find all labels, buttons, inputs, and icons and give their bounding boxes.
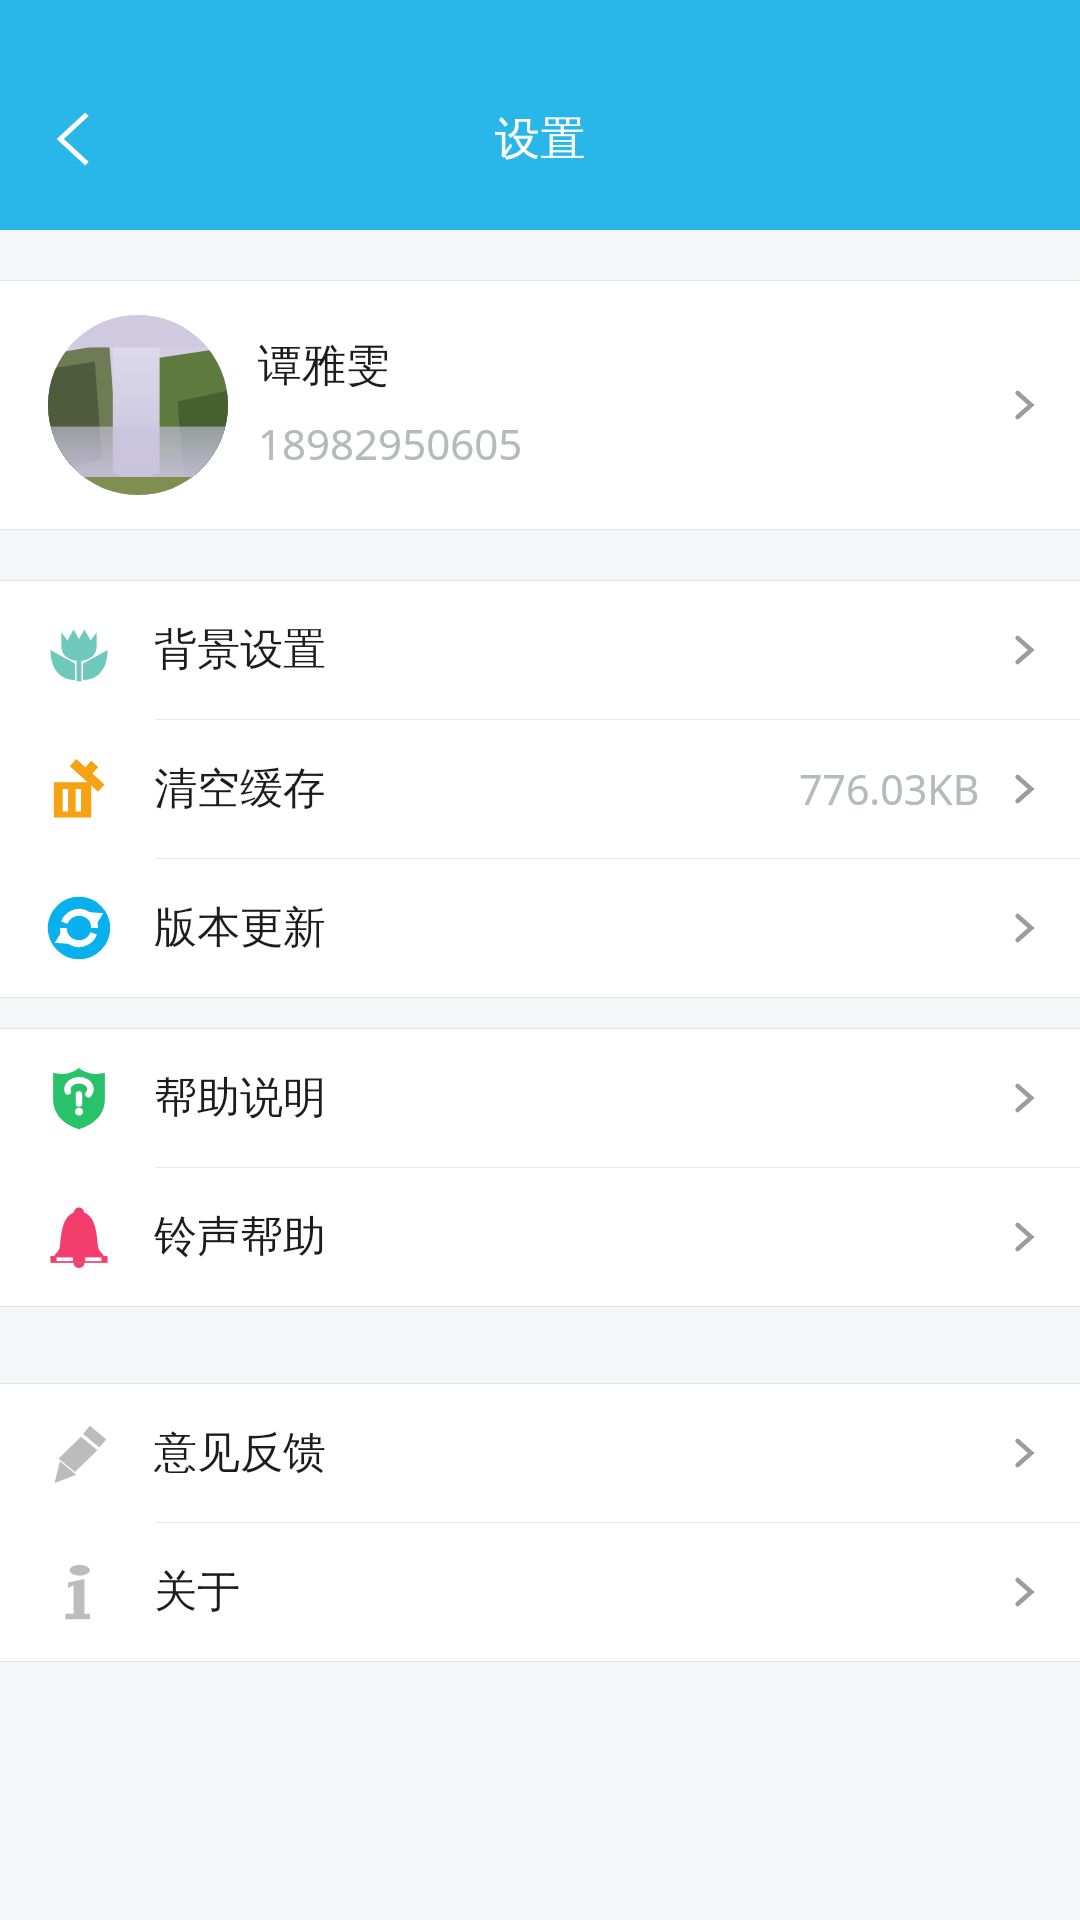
staticText: 版本更新 xyxy=(154,901,326,955)
button[interactable]: Back xyxy=(20,84,130,194)
staticText: 设置 xyxy=(0,111,1080,168)
staticText: 关于 xyxy=(154,1565,240,1619)
button[interactable]: 关于 xyxy=(0,1523,1080,1661)
button[interactable]: 谭雅雯 xyxy=(0,281,1080,529)
staticText: 帮助说明 xyxy=(154,1071,326,1125)
button[interactable]: 版本更新 xyxy=(0,859,1080,997)
staticText: 背景设置 xyxy=(154,623,326,677)
staticText: 18982950605 xyxy=(258,415,523,472)
button[interactable]: 帮助说明 xyxy=(0,1029,1080,1167)
button[interactable]: 意见反馈 xyxy=(0,1384,1080,1522)
button[interactable]: 铃声帮助 xyxy=(0,1168,1080,1306)
button[interactable]: 背景设置 xyxy=(0,581,1080,719)
button[interactable]: 清空缓存 xyxy=(0,720,1080,858)
staticText: 776.03KB xyxy=(799,761,980,817)
staticText: 意见反馈 xyxy=(154,1426,326,1480)
staticText: 谭雅雯 xyxy=(258,338,390,393)
staticText: 清空缓存 xyxy=(154,762,326,816)
staticText: 铃声帮助 xyxy=(154,1210,326,1264)
